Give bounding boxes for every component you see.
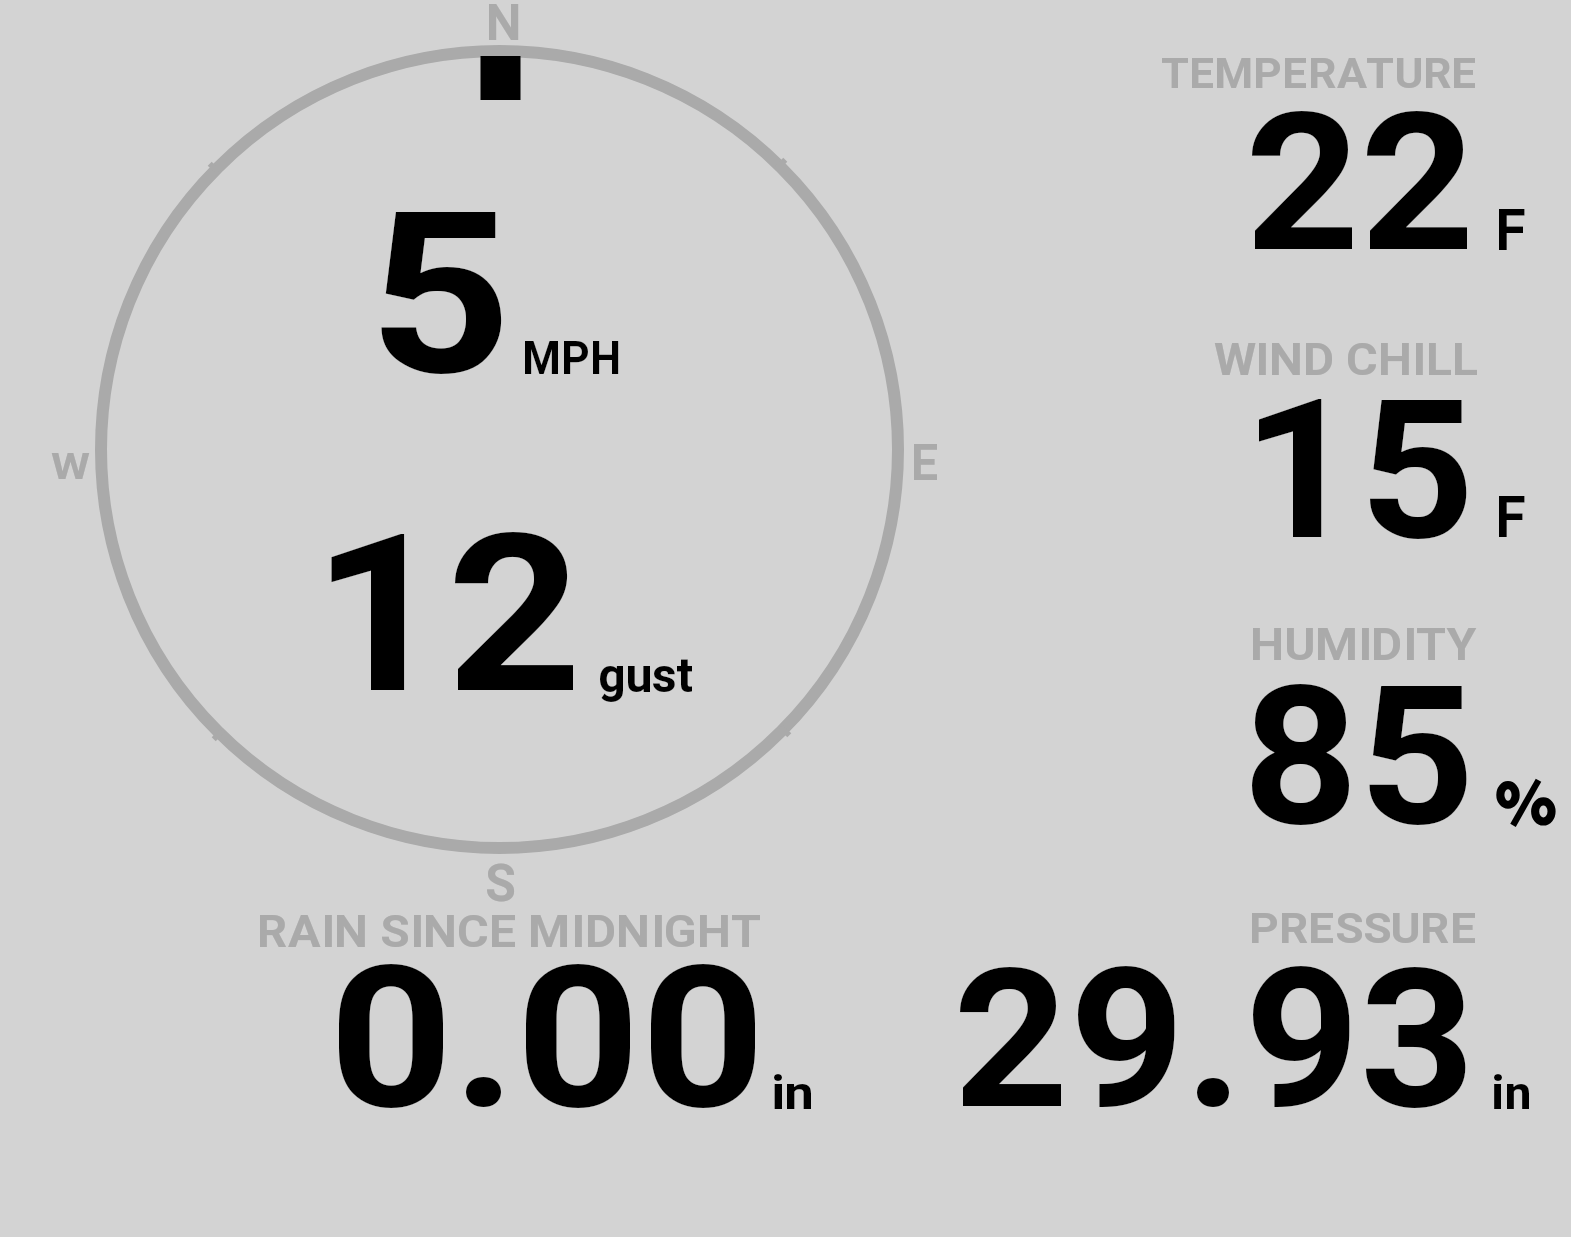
button[interactable]: Wind compass, 5 miles per hour, gusting … [96, 50, 904, 850]
button[interactable]: Rain since midnight 0.00 inches [250, 900, 830, 1125]
button[interactable]: Humidity 85 percent [1150, 615, 1570, 835]
button[interactable]: Temperature 22 degrees Fahrenheit [1150, 45, 1560, 260]
button[interactable]: Pressure 29.93 inches [940, 900, 1550, 1125]
button[interactable]: Wind chill 15 degrees Fahrenheit [1150, 330, 1560, 545]
